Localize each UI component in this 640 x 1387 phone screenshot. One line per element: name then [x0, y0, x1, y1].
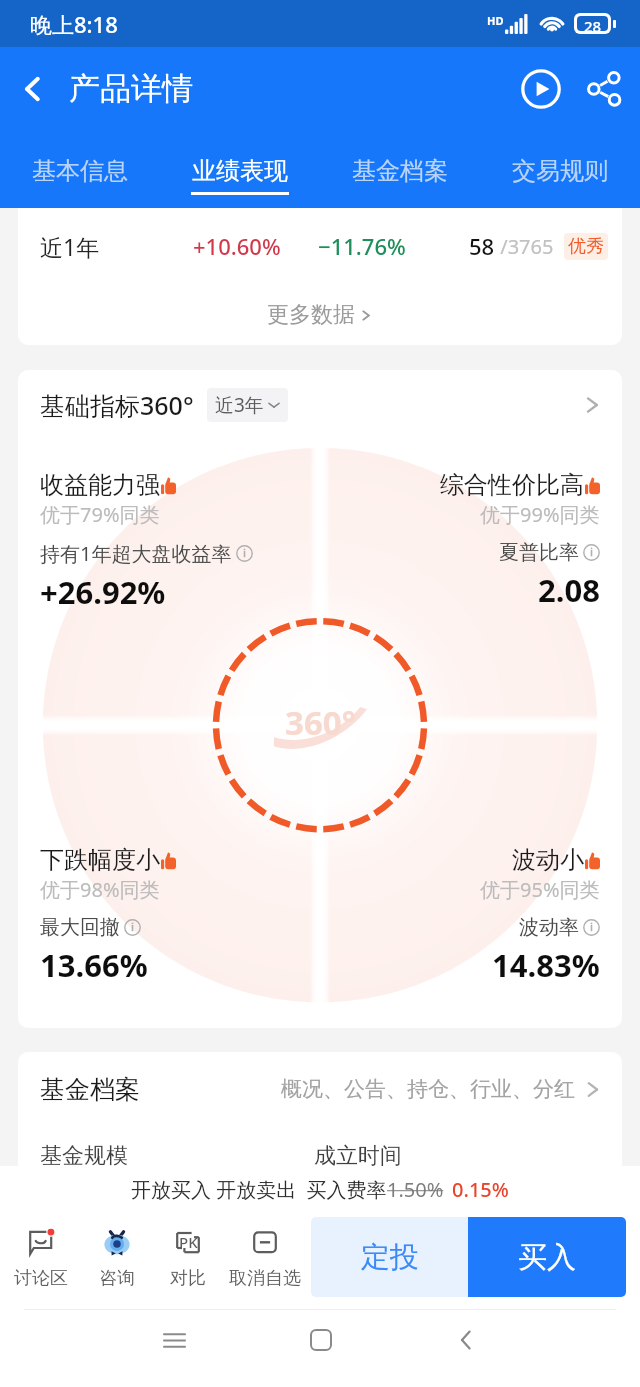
button[interactable]: 交易规则	[480, 130, 640, 208]
staticText: 成立时间	[314, 1142, 402, 1166]
staticText: 综合性价比高	[440, 470, 584, 500]
staticText: 更多数据	[267, 301, 355, 329]
staticText: 0.15%	[452, 1176, 509, 1203]
staticText: 收益能力强	[40, 470, 160, 500]
button[interactable]: PK	[152, 1213, 224, 1303]
button[interactable]: 取消自选	[224, 1213, 306, 1303]
staticText: +10.60%	[193, 231, 281, 261]
staticText: 下跌幅度小	[40, 845, 160, 875]
staticText: 最大回撤	[40, 915, 120, 940]
staticText: 业绩表现	[192, 156, 288, 186]
button[interactable]: Share	[576, 61, 632, 117]
staticText: 近3年	[215, 392, 264, 418]
staticText: 优于95%同类	[480, 876, 600, 903]
staticText: 基金档案	[352, 156, 448, 186]
staticText: 定投	[361, 1239, 419, 1276]
staticText: 近1年	[40, 231, 100, 262]
button[interactable]: 咨询	[82, 1213, 152, 1303]
button[interactable]: Back	[0, 56, 66, 122]
staticText: 交易规则	[512, 156, 608, 186]
staticText: 优于98%同类	[40, 876, 160, 903]
staticText: 开放买入 开放卖出 买入费率	[131, 1176, 387, 1203]
staticText: 1.50%	[387, 1176, 444, 1203]
staticText: 优于99%同类	[480, 501, 600, 528]
staticText: 360°	[285, 700, 356, 745]
staticText: 基础指标360°	[40, 388, 194, 422]
staticText: 波动小	[512, 845, 584, 875]
button[interactable]: 买入	[468, 1217, 626, 1297]
button[interactable]: 业绩表现	[160, 130, 320, 208]
button[interactable]: Play	[513, 61, 569, 117]
staticText: 晚上8:18	[30, 9, 118, 39]
button[interactable]: 更多数据	[18, 284, 622, 345]
button[interactable]: 讨论区	[0, 1213, 82, 1303]
staticText: 优秀	[568, 235, 604, 258]
staticText: 夏普比率	[499, 540, 579, 565]
staticText: +26.92%	[40, 571, 166, 613]
staticText: 波动率	[519, 915, 579, 940]
staticText: 14.83%	[492, 944, 600, 986]
staticText: 优于79%同类	[40, 501, 160, 528]
staticText: 持有1年超大盘收益率	[40, 540, 232, 567]
staticText: HD	[487, 13, 504, 28]
staticText: 概况、公告、持仓、行业、分红	[281, 1076, 575, 1102]
button[interactable]: 基本信息	[0, 130, 160, 208]
staticText: −11.76%	[318, 231, 406, 261]
button[interactable]: Back	[438, 1312, 494, 1368]
button[interactable]: 定投	[311, 1217, 468, 1297]
button[interactable]: Home	[293, 1312, 349, 1368]
button[interactable]: Menu	[146, 1312, 202, 1368]
staticText: 取消自选	[229, 1267, 301, 1290]
staticText: 基本信息	[32, 156, 128, 186]
staticText: 基金档案	[40, 1074, 140, 1105]
staticText: 产品详情	[69, 69, 193, 108]
button[interactable]: 基金档案	[40, 1052, 602, 1126]
staticText: 58	[469, 231, 495, 261]
staticText: 13.66%	[40, 944, 148, 986]
staticText: 咨询	[99, 1267, 135, 1290]
button[interactable]: 基金档案	[320, 130, 480, 208]
staticText: 2.08	[538, 569, 600, 611]
staticText: 对比	[170, 1267, 206, 1290]
staticText: 买入	[518, 1239, 576, 1276]
staticText: 讨论区	[14, 1267, 68, 1290]
staticText: 基金规模	[40, 1142, 128, 1166]
staticText: /3765	[495, 233, 554, 260]
staticText: 28	[584, 16, 602, 31]
staticText: PK	[179, 1232, 198, 1252]
button[interactable]: 基础指标360°	[40, 370, 602, 440]
